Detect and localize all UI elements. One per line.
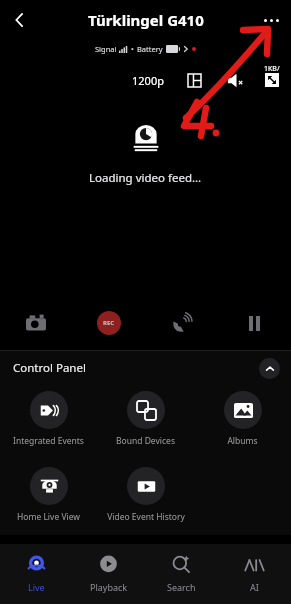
button[interactable]: Integrated Events (0, 385, 97, 453)
staticText: Integrated Events (13, 435, 84, 447)
button[interactable]: Snapshot (0, 296, 72, 350)
staticText: Live (28, 581, 45, 593)
button[interactable]: 1200p (129, 71, 167, 90)
staticText: 1KB/ (264, 64, 280, 74)
button[interactable]: Talk (145, 296, 218, 350)
staticText: AI (250, 581, 259, 593)
button[interactable]: Albums (194, 385, 291, 453)
button[interactable]: Live (0, 544, 72, 604)
button[interactable]: AI (218, 544, 291, 604)
staticText: Signal (95, 44, 117, 54)
staticText: Search (167, 581, 196, 593)
button[interactable]: Layout (183, 69, 205, 91)
staticText: Battery (137, 44, 163, 54)
staticText: Playback (90, 581, 128, 593)
staticText: Home Live View (17, 511, 80, 523)
staticText: Türklingel G410 (88, 10, 204, 30)
button[interactable]: More options (251, 0, 291, 40)
button[interactable]: Fullscreen (261, 69, 283, 91)
staticText: Video Event History (107, 511, 185, 523)
staticText: • (131, 44, 134, 54)
button[interactable]: Back (0, 0, 40, 40)
button[interactable]: Pause (218, 296, 291, 350)
staticText: Bound Devices (116, 435, 175, 447)
button[interactable]: Playback (72, 544, 145, 604)
button[interactable]: Video Event History (97, 461, 194, 529)
staticText: Loading video feed... (89, 170, 202, 186)
staticText: 1200p (132, 73, 164, 88)
button[interactable]: Record (72, 296, 145, 350)
button[interactable]: Bound Devices (97, 385, 194, 453)
button[interactable]: Search (145, 544, 218, 604)
staticText: Control Panel (13, 360, 86, 376)
button[interactable]: Unmute (223, 68, 247, 92)
staticText: Albums (227, 435, 258, 447)
button[interactable]: Collapse (259, 358, 280, 379)
staticText: REC (103, 319, 115, 327)
button[interactable]: Home Live View (0, 461, 97, 529)
